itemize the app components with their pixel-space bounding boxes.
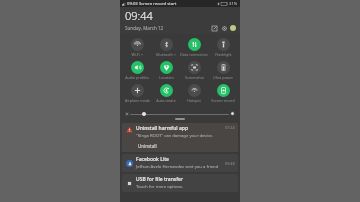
staticText: Sunday, March 12 (125, 25, 164, 31)
staticText: Location (159, 75, 174, 80)
staticText: Ultra power (213, 75, 233, 80)
staticText: Jeffson Avelo Hernandez sent you a frien… (136, 164, 225, 170)
staticText: "Kinga ROOT" can damage your device. (136, 133, 214, 139)
staticText: Wi-Fi (131, 52, 140, 57)
staticText: Data connection (180, 52, 208, 57)
button[interactable]: Bluetooth (152, 37, 180, 58)
button[interactable]: Data connection (180, 37, 208, 58)
button[interactable]: Facebook Lite (122, 154, 238, 172)
staticText: Auto-rotate (156, 98, 176, 103)
button[interactable]: Airplane mode (123, 83, 151, 104)
staticText: Airplane mode (125, 98, 150, 103)
staticText: 09:03 (127, 1, 138, 7)
staticText: 09:48 (225, 161, 235, 166)
button[interactable]: Flashlight (209, 37, 237, 58)
staticText: Facebook Lite (136, 156, 169, 163)
button[interactable]: USB for file transfer (122, 174, 238, 192)
button[interactable]: Auto-rotate (152, 83, 180, 104)
staticText: 31% (229, 1, 238, 7)
button[interactable]: Profile (230, 25, 236, 31)
staticText: Touch for more options. (136, 184, 184, 190)
staticText: Audio profiles (125, 75, 149, 80)
staticText: Screen record start (139, 1, 177, 7)
staticText: 09:44 (125, 8, 153, 23)
staticText: USB for file transfer (136, 176, 184, 183)
button[interactable]: Screenshot (180, 60, 208, 81)
button[interactable]: Ultra power (209, 60, 237, 81)
button[interactable]: Audio profiles (123, 60, 151, 81)
button[interactable]: Settings (220, 24, 228, 32)
button[interactable]: Screen record (209, 83, 237, 104)
staticText: Screenshot (185, 75, 204, 80)
button[interactable]: Expand (175, 118, 185, 120)
button[interactable]: Wi-Fi (123, 37, 151, 58)
staticText: Uninstall (138, 143, 157, 149)
staticText: Bluetooth (156, 52, 173, 57)
staticText: 07:24 (225, 125, 235, 130)
staticText: Hotspot (187, 98, 201, 103)
button[interactable]: Hotspot (180, 83, 208, 104)
staticText: Screen record (211, 98, 235, 103)
button[interactable]: Edit (210, 24, 218, 32)
button[interactable]: Uninstall harmful app (122, 123, 238, 152)
staticText: Uninstall harmful app (136, 125, 188, 132)
button[interactable]: Uninstall (136, 142, 159, 150)
staticText: Flashlight (215, 52, 232, 57)
button[interactable]: Location (152, 60, 180, 81)
